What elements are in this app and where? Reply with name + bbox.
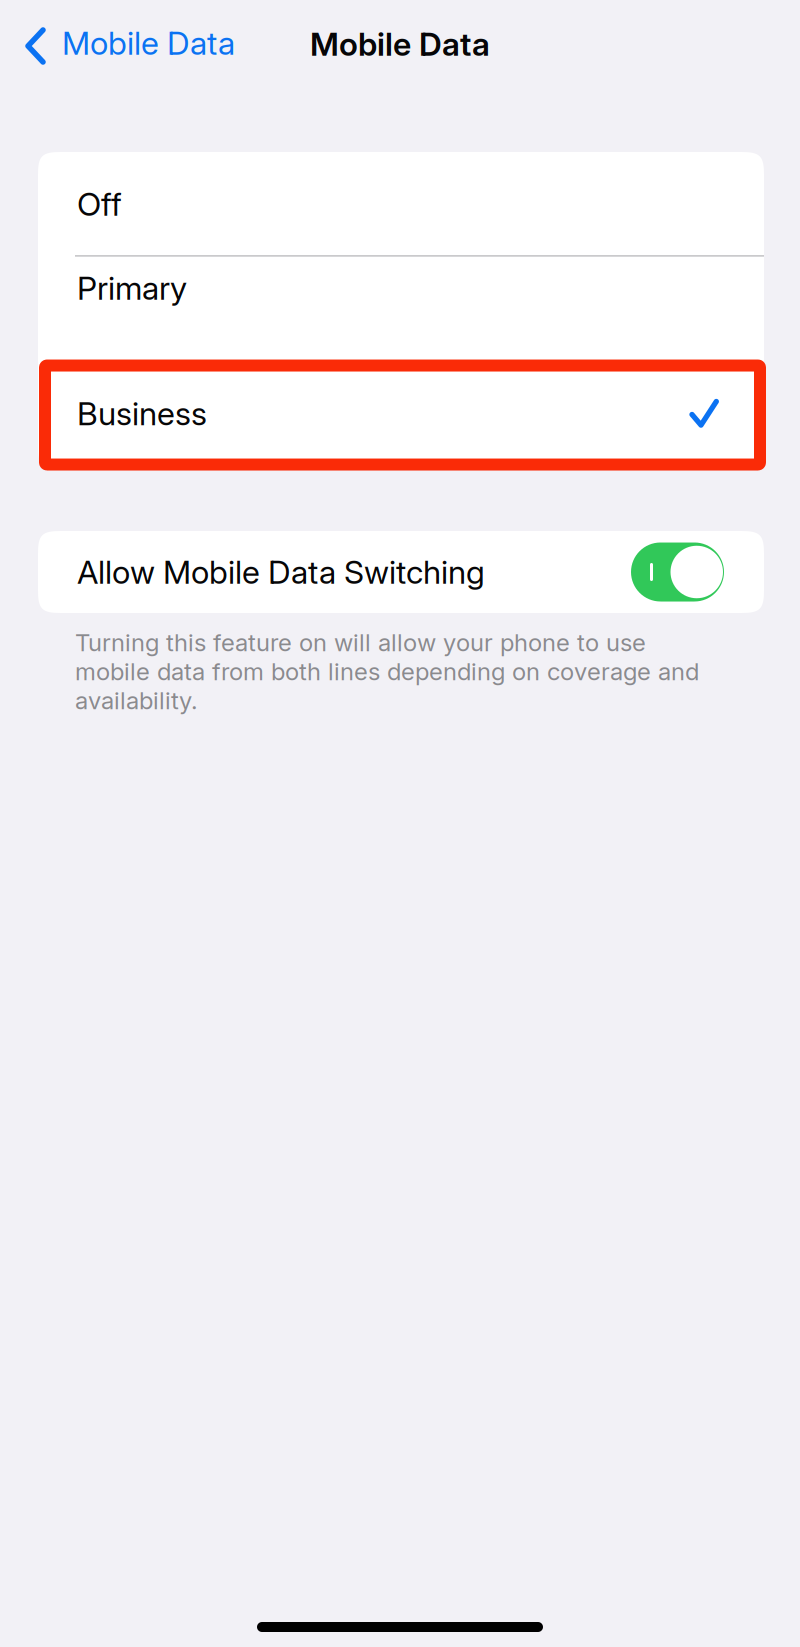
staticText: Allow Mobile Data Switching (77, 553, 485, 591)
staticText: Mobile Data (310, 25, 490, 63)
button[interactable]: Off (38, 152, 764, 256)
staticText: Turning this feature on will allow your … (75, 628, 699, 715)
staticText: Business (77, 394, 207, 433)
button[interactable]: Mobile Data (0, 7, 249, 79)
button[interactable]: Primary (38, 256, 764, 358)
button[interactable]: Business (38, 358, 764, 469)
staticText: Mobile Data (62, 24, 235, 62)
staticText: Off (77, 185, 122, 223)
button[interactable]: Allow Mobile Data Switching (38, 531, 764, 613)
staticText: Primary (77, 269, 187, 307)
